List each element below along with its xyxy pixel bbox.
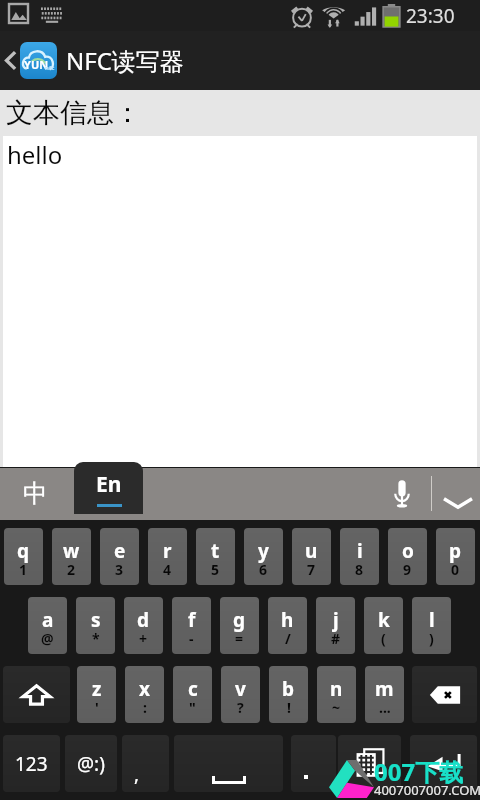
button[interactable]: Back bbox=[0, 31, 20, 90]
button[interactable]: Space bbox=[174, 735, 283, 792]
button[interactable]: v bbox=[221, 666, 260, 723]
staticText: u bbox=[305, 538, 318, 564]
button[interactable]: Period bbox=[291, 735, 336, 792]
button[interactable]: Numbers bbox=[3, 735, 60, 792]
staticText: v bbox=[235, 676, 246, 702]
staticText: = bbox=[235, 629, 244, 648]
staticText: 文本信息： bbox=[6, 96, 141, 130]
staticText: * bbox=[92, 629, 100, 648]
button[interactable]: hello bbox=[3, 136, 477, 467]
button[interactable]: s bbox=[76, 597, 115, 654]
button[interactable]: Shift bbox=[3, 666, 70, 723]
staticText: 3 bbox=[115, 560, 124, 579]
button[interactable]: App icon bbox=[20, 42, 57, 79]
staticText: ~ bbox=[332, 698, 341, 717]
button[interactable]: Voice input bbox=[378, 467, 426, 519]
staticText: " bbox=[189, 698, 196, 717]
button[interactable]: y bbox=[244, 528, 283, 585]
staticText: ) bbox=[429, 629, 434, 648]
staticText: b bbox=[282, 676, 295, 702]
button[interactable]: b bbox=[269, 666, 308, 723]
staticText: p bbox=[449, 538, 462, 564]
staticText: 7 bbox=[307, 560, 316, 579]
staticText: @ bbox=[41, 629, 54, 648]
button[interactable]: Enter bbox=[410, 735, 477, 792]
staticText: f bbox=[188, 607, 196, 633]
button[interactable]: 中 bbox=[5, 467, 65, 519]
button[interactable]: i bbox=[340, 528, 379, 585]
staticText: 6 bbox=[259, 560, 268, 579]
staticText: @:) bbox=[77, 751, 105, 777]
button[interactable]: d bbox=[124, 597, 163, 654]
button[interactable]: c bbox=[173, 666, 212, 723]
staticText: o bbox=[402, 538, 414, 564]
staticText: NFC读写器 bbox=[66, 44, 184, 77]
staticText: h bbox=[281, 607, 294, 633]
button[interactable]: p bbox=[436, 528, 475, 585]
button[interactable]: t bbox=[196, 528, 235, 585]
staticText: 1 bbox=[19, 560, 28, 579]
staticText: # bbox=[331, 629, 341, 648]
staticText: ! bbox=[287, 698, 291, 717]
staticText: + bbox=[139, 629, 148, 648]
button[interactable]: k bbox=[364, 597, 403, 654]
staticText: - bbox=[189, 629, 194, 648]
staticText: 007下载 bbox=[374, 755, 464, 788]
staticText: ' bbox=[95, 698, 99, 717]
button[interactable]: Keyboard layout bbox=[338, 735, 401, 792]
button[interactable]: f bbox=[172, 597, 211, 654]
staticText: d bbox=[137, 607, 150, 633]
button[interactable]: r bbox=[148, 528, 187, 585]
staticText: 2 bbox=[67, 560, 76, 579]
button[interactable]: Emoji bbox=[65, 735, 117, 792]
staticText: m bbox=[375, 676, 394, 702]
button[interactable]: w bbox=[52, 528, 91, 585]
button[interactable]: j bbox=[316, 597, 355, 654]
staticText: ? bbox=[237, 698, 244, 717]
staticText: 中 bbox=[23, 478, 48, 509]
staticText: x bbox=[139, 676, 150, 702]
staticText: 8 bbox=[355, 560, 364, 579]
button[interactable]: e bbox=[100, 528, 139, 585]
button[interactable]: a bbox=[28, 597, 67, 654]
staticText: w bbox=[63, 538, 80, 564]
staticText: hello bbox=[7, 138, 63, 171]
button[interactable]: q bbox=[4, 528, 43, 585]
staticText: nfc bbox=[45, 64, 55, 72]
staticText: / bbox=[285, 629, 291, 648]
staticText: j bbox=[333, 607, 339, 633]
button[interactable]: Hide keyboard bbox=[436, 467, 480, 519]
staticText: i bbox=[357, 538, 363, 564]
staticText: g bbox=[233, 607, 246, 633]
button[interactable]: h bbox=[268, 597, 307, 654]
staticText: r bbox=[163, 538, 172, 564]
button[interactable]: m bbox=[365, 666, 404, 723]
staticText: n bbox=[330, 676, 343, 702]
button[interactable]: Backspace bbox=[412, 666, 477, 723]
staticText: z bbox=[92, 676, 102, 702]
staticText: c bbox=[188, 676, 198, 702]
button[interactable]: u bbox=[292, 528, 331, 585]
staticText: YUN bbox=[24, 57, 49, 72]
staticText: q bbox=[17, 538, 30, 564]
staticText: , bbox=[134, 761, 140, 787]
staticText: : bbox=[143, 698, 147, 717]
staticText: k bbox=[378, 607, 390, 633]
staticText: ... bbox=[379, 698, 391, 717]
staticText: En bbox=[96, 470, 122, 499]
button[interactable]: x bbox=[125, 666, 164, 723]
button[interactable]: o bbox=[388, 528, 427, 585]
button[interactable]: g bbox=[220, 597, 259, 654]
button[interactable]: z bbox=[77, 666, 116, 723]
staticText: y bbox=[258, 538, 269, 564]
staticText: ( bbox=[381, 629, 386, 648]
button[interactable]: n bbox=[317, 666, 356, 723]
button[interactable]: Comma bbox=[122, 735, 169, 792]
staticText: l bbox=[429, 607, 435, 633]
button[interactable]: l bbox=[412, 597, 451, 654]
button[interactable]: En bbox=[74, 462, 143, 514]
staticText: 23:30 bbox=[406, 3, 455, 29]
staticText: a bbox=[42, 607, 54, 633]
staticText: 4 bbox=[163, 560, 172, 579]
staticText: t bbox=[211, 538, 220, 564]
